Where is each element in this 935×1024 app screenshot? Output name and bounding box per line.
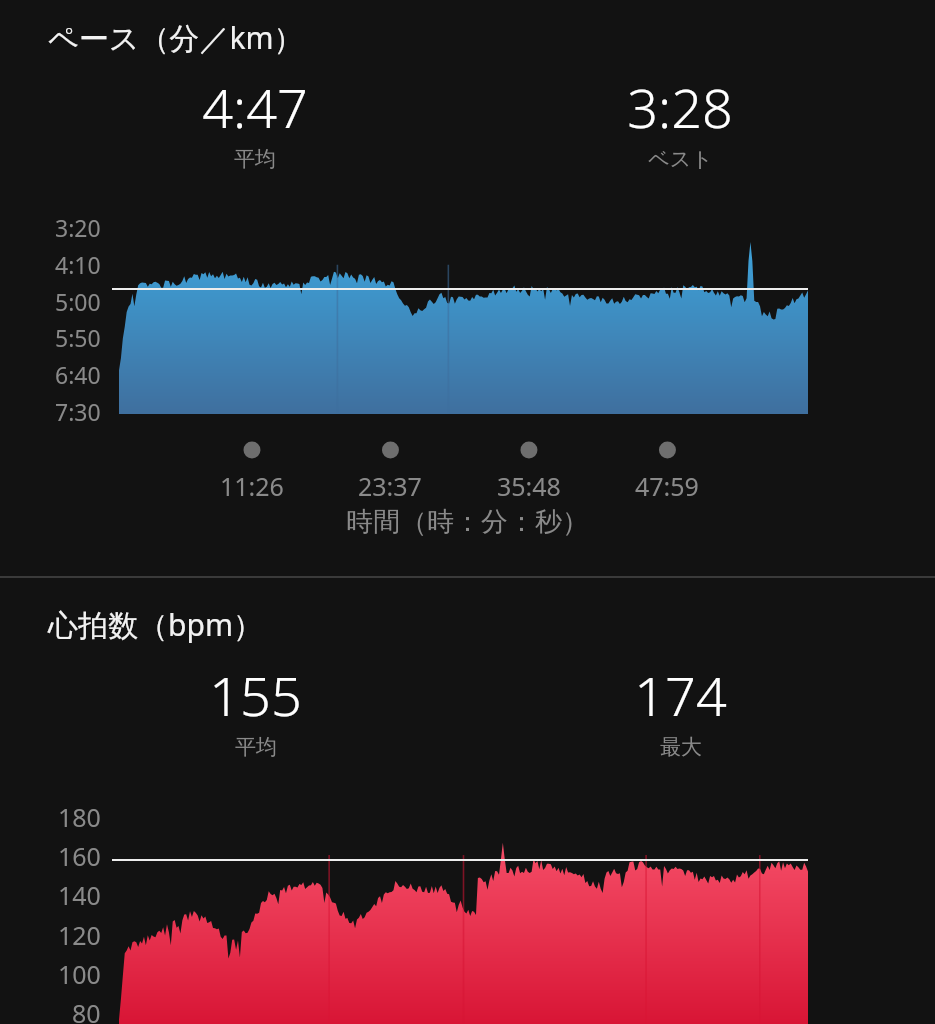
button[interactable]: 3:28: [627, 70, 733, 172]
staticText: 47:59: [635, 469, 699, 503]
staticText: 23:37: [358, 469, 422, 503]
staticText: 155: [209, 658, 302, 732]
button[interactable]: 155: [209, 658, 302, 760]
staticText: 最大: [660, 734, 702, 760]
staticText: 35:48: [497, 469, 561, 503]
staticText: 7:30: [55, 396, 101, 427]
staticText: ベスト: [648, 146, 713, 172]
staticText: 平均: [235, 734, 277, 760]
staticText: ペース（分／km）: [48, 17, 304, 58]
staticText: 平均: [234, 146, 276, 172]
staticText: 6:40: [55, 359, 101, 390]
staticText: 5:00: [55, 286, 101, 317]
staticText: 160: [58, 839, 101, 873]
staticText: 120: [58, 918, 101, 952]
staticText: 174: [634, 658, 727, 732]
staticText: 4:47: [202, 70, 308, 144]
staticText: 100: [58, 957, 101, 991]
staticText: 11:26: [220, 469, 284, 503]
staticText: 3:20: [55, 212, 101, 243]
staticText: 140: [58, 878, 101, 912]
staticText: 180: [58, 800, 101, 834]
staticText: 心拍数（bpm）: [48, 604, 263, 645]
staticText: 5:50: [55, 322, 101, 353]
staticText: 時間（時：分：秒）: [346, 505, 589, 539]
button[interactable]: 174: [634, 658, 727, 760]
staticText: 4:10: [55, 249, 101, 280]
staticText: 80: [72, 996, 101, 1024]
staticText: 3:28: [627, 70, 733, 144]
button[interactable]: 4:47: [202, 70, 308, 172]
button[interactable]: ペース（分／km）: [0, 0, 935, 576]
button[interactable]: 心拍数（bpm）: [0, 578, 935, 1024]
